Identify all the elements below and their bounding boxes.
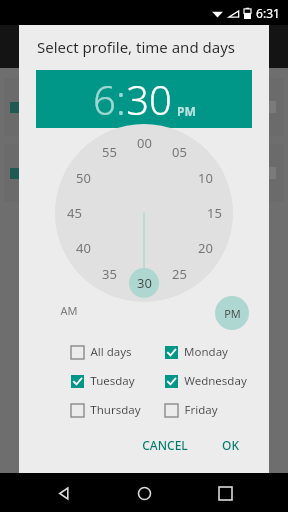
staticText: AM	[60, 303, 78, 318]
staticText: 6:31	[256, 5, 280, 21]
staticText: 00	[137, 134, 152, 152]
staticText: 30	[137, 274, 152, 292]
button[interactable]: Wednesday	[165, 371, 247, 391]
button[interactable]: Friday	[165, 400, 218, 420]
staticText: Monday	[184, 344, 228, 360]
staticText: 6	[93, 72, 116, 126]
staticText: 15	[207, 204, 222, 222]
button[interactable]: All days	[71, 342, 132, 362]
staticText: 55	[102, 143, 117, 161]
staticText: CANCEL	[142, 437, 188, 453]
staticText: :	[116, 72, 126, 126]
staticText: 30	[126, 72, 172, 126]
staticText: 10	[198, 169, 213, 187]
staticText: Friday	[184, 402, 218, 418]
staticText: 05	[172, 143, 187, 161]
button[interactable]: PM	[215, 296, 249, 330]
staticText: 50	[76, 169, 91, 187]
button[interactable]: OK	[214, 431, 247, 459]
staticText: 20	[198, 239, 213, 257]
staticText: OK	[222, 437, 239, 453]
staticText: All days	[90, 344, 132, 360]
button[interactable]: Tuesday	[71, 371, 135, 391]
button[interactable]: Back	[47, 476, 81, 510]
button[interactable]: Monday	[165, 342, 228, 362]
staticText: 35	[102, 265, 117, 283]
button[interactable]: Thursday	[71, 400, 141, 420]
button[interactable]: Minute dial	[55, 124, 233, 302]
staticText: Select profile, time and days	[37, 37, 235, 57]
staticText: PM	[177, 103, 196, 119]
staticText: Tuesday	[90, 373, 135, 389]
button[interactable]: AM	[55, 296, 83, 324]
staticText: Wednesday	[184, 373, 247, 389]
staticText: PM	[224, 306, 241, 321]
staticText: 40	[76, 239, 91, 257]
staticText: 45	[67, 204, 82, 222]
staticText: Thursday	[90, 402, 141, 418]
button[interactable]: CANCEL	[134, 431, 196, 459]
staticText: 25	[172, 265, 187, 283]
button[interactable]: Home	[127, 476, 161, 510]
button[interactable]: Recent apps	[208, 476, 242, 510]
